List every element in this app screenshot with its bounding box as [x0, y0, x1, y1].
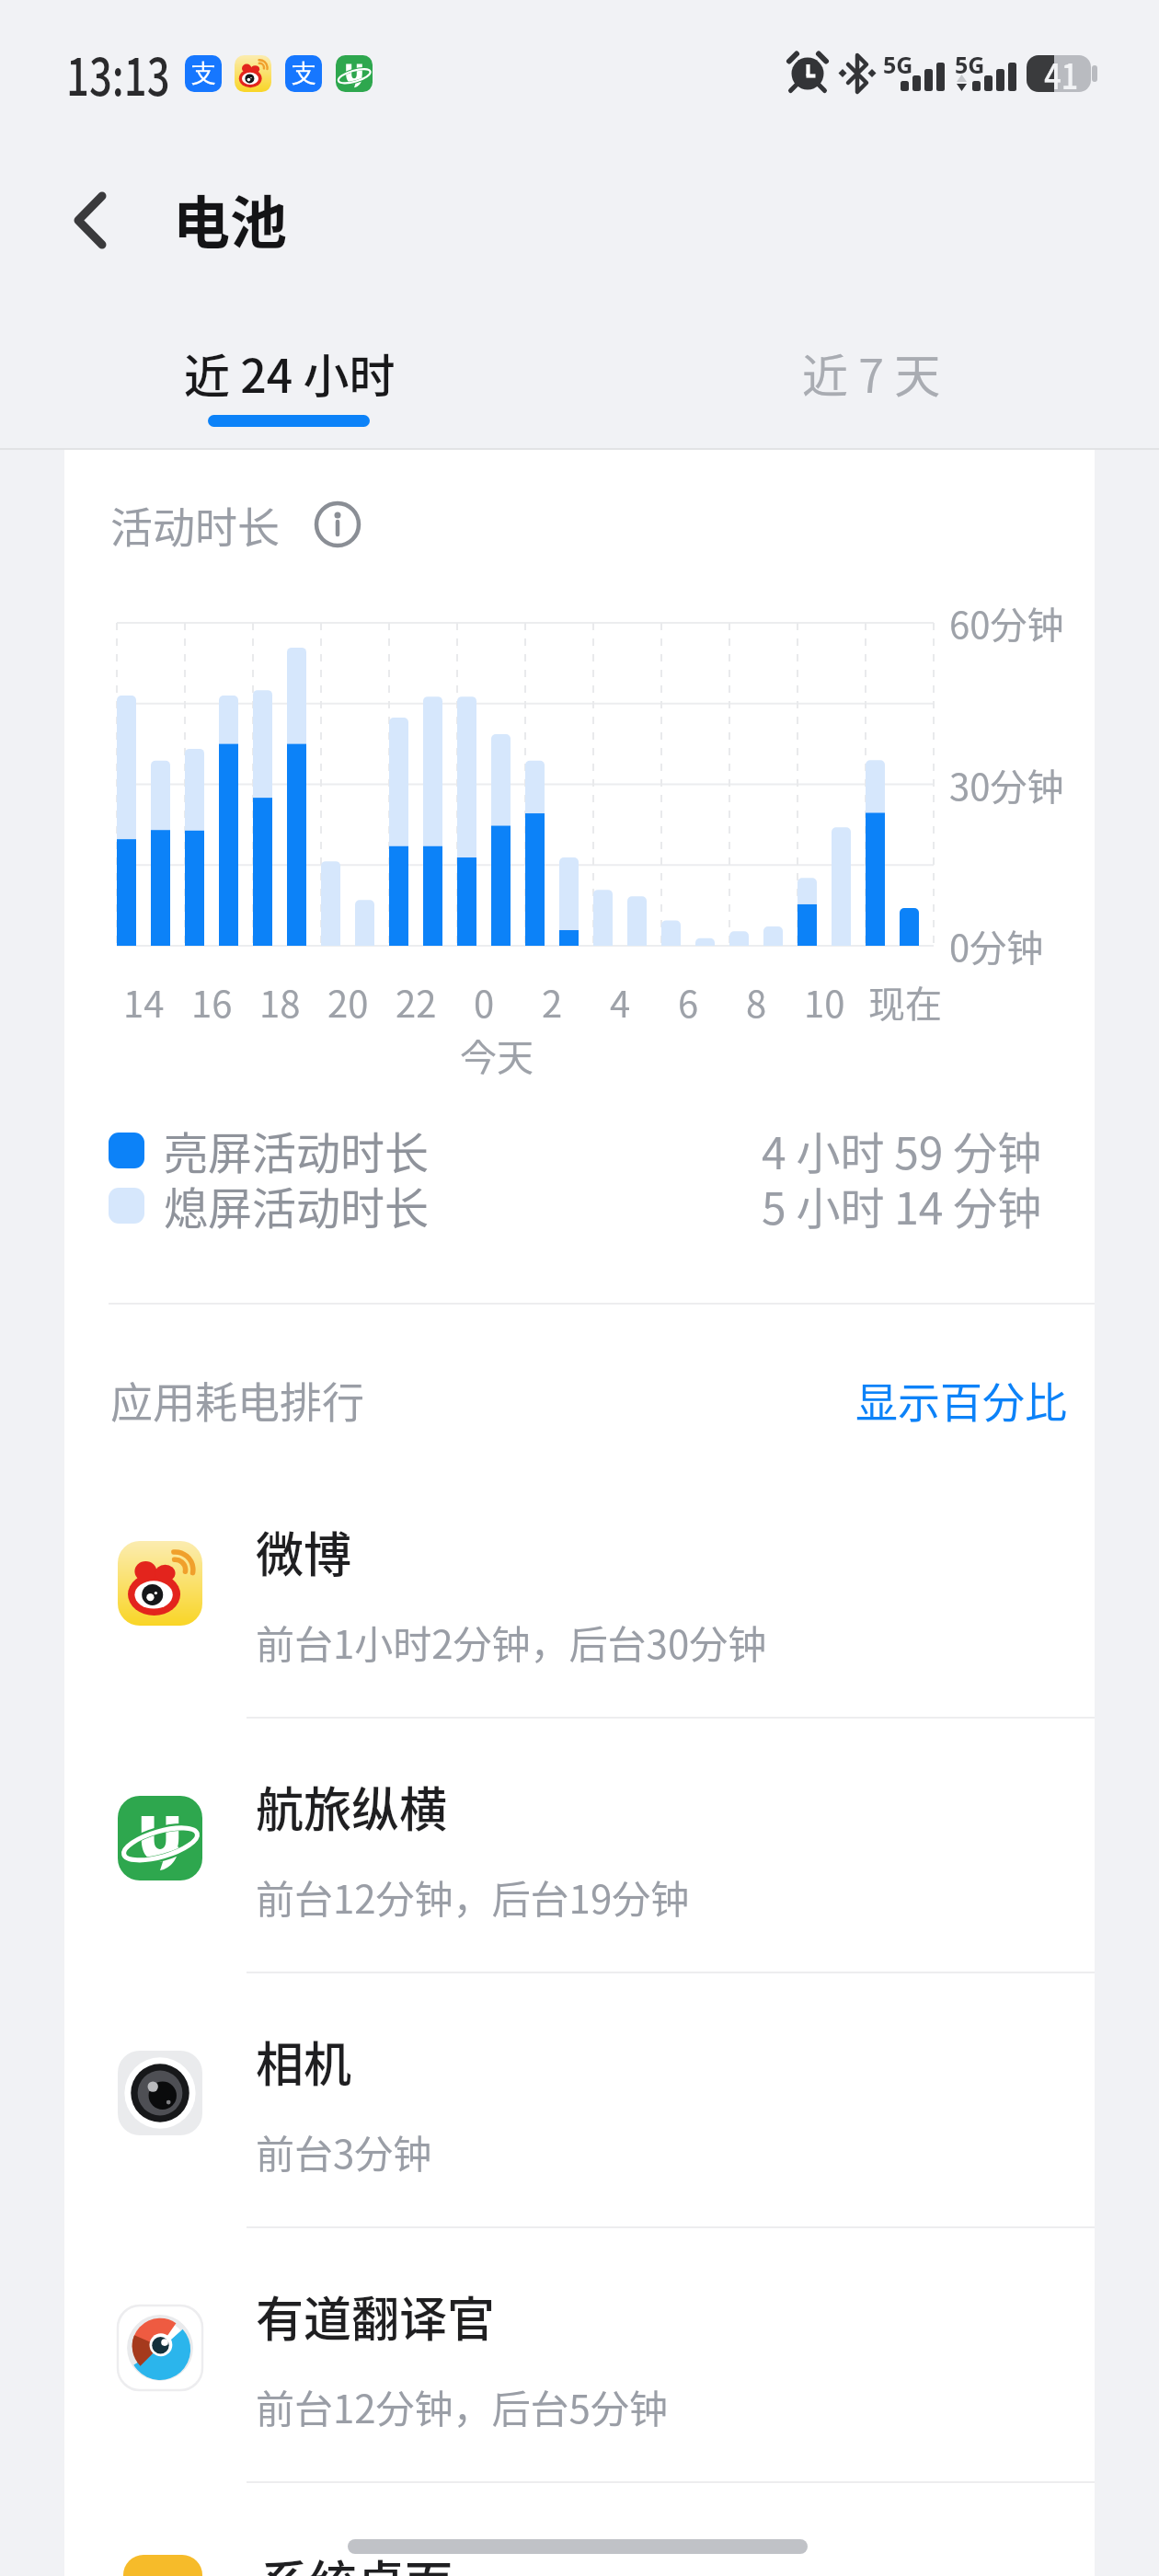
- button[interactable]: 近 24 小时: [106, 322, 474, 423]
- staticText: 今天: [460, 1029, 534, 1082]
- staticText: 5G: [955, 49, 985, 80]
- staticText: 0: [474, 975, 495, 1029]
- staticText: 0分钟: [949, 919, 1044, 972]
- staticText: 电池: [173, 178, 288, 260]
- staticText: 16: [191, 975, 233, 1029]
- button[interactable]: [64, 2266, 1095, 2521]
- staticText: 10: [804, 975, 845, 1029]
- staticText: 6: [678, 975, 699, 1029]
- staticText: 近 7 天: [802, 339, 941, 406]
- staticText: 活动时长: [110, 494, 280, 556]
- staticText: 4: [610, 975, 631, 1029]
- staticText: 41: [1044, 49, 1079, 99]
- staticText: 13:13: [66, 36, 170, 110]
- staticText: 微博: [256, 1517, 352, 1586]
- staticText: 显示百分比: [855, 1369, 1067, 1431]
- staticText: 5G: [883, 49, 913, 80]
- staticText: 支: [191, 58, 216, 89]
- staticText: 航旅纵横: [256, 1772, 448, 1841]
- staticText: 14: [123, 975, 165, 1029]
- staticText: 前台1小时2分钟，后台30分钟: [256, 1614, 767, 1670]
- button[interactable]: [64, 1756, 1095, 2011]
- staticText: 20: [327, 975, 369, 1029]
- staticText: 现在: [868, 975, 942, 1029]
- staticText: 60分钟: [949, 596, 1064, 650]
- staticText: 前台12分钟，后台5分钟: [256, 2378, 668, 2434]
- button[interactable]: 显示百分比: [819, 1349, 1067, 1450]
- staticText: 熄屏活动时长: [164, 1173, 430, 1237]
- button[interactable]: [64, 2011, 1095, 2266]
- staticText: 8: [746, 975, 767, 1029]
- staticText: 应用耗电排行: [110, 1369, 364, 1431]
- staticText: 22: [396, 975, 437, 1029]
- staticText: 支: [292, 58, 316, 89]
- staticText: 18: [259, 975, 301, 1029]
- button[interactable]: [64, 2517, 1095, 2576]
- staticText: 系统桌面: [261, 2546, 453, 2576]
- staticText: 前台12分钟，后台19分钟: [256, 1869, 690, 1925]
- staticText: 有道翻译官: [256, 2282, 496, 2351]
- button[interactable]: [64, 1501, 1095, 1756]
- staticText: 4 小时 59 分钟: [762, 1118, 1042, 1182]
- staticText: 2: [542, 975, 563, 1029]
- staticText: 5 小时 14 分钟: [762, 1173, 1042, 1237]
- staticText: 30分钟: [949, 758, 1064, 811]
- button[interactable]: 近 7 天: [687, 322, 1055, 423]
- staticText: 近 24 小时: [184, 339, 396, 406]
- staticText: 相机: [256, 2027, 352, 2096]
- button[interactable]: [309, 496, 366, 553]
- staticText: 亮屏活动时长: [164, 1118, 430, 1182]
- button[interactable]: [55, 170, 147, 271]
- staticText: 前台3分钟: [256, 2123, 432, 2179]
